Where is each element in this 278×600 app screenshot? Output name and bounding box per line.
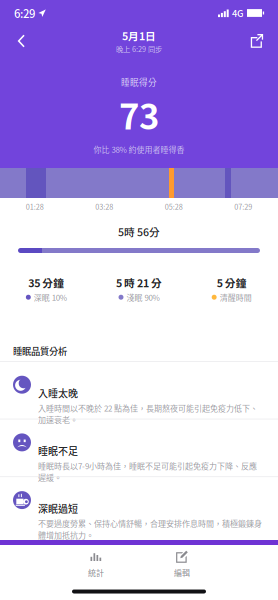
staticText: 03:28 xyxy=(95,201,113,212)
staticText: 淺眠 90% xyxy=(126,291,159,303)
staticText: 35 分鐘 xyxy=(28,275,64,290)
staticText: 5 分鐘 xyxy=(217,275,247,290)
staticText: 入睡時間以不晚於 22 點為佳，長期熬夜可能引起免疫力低下、加速衰老。 xyxy=(38,402,258,425)
staticText: 5月1日 xyxy=(122,28,156,43)
staticText: 5 時 21 分 xyxy=(116,275,162,290)
button[interactable]: 睡眠不足 xyxy=(0,419,278,476)
button[interactable]: 編輯 xyxy=(154,547,210,581)
staticText: 深眠過短 xyxy=(38,501,78,516)
staticText: 編輯 xyxy=(174,567,190,578)
staticText: 睡眠品質分析 xyxy=(13,344,67,357)
staticText: 不要過度勞累、保持心情舒暢，合理安排作息時間，積極鍛鍊身體增加抵抗力。 xyxy=(38,518,262,541)
staticText: 5時 56分 xyxy=(118,224,160,239)
button[interactable]: 統計 xyxy=(68,547,124,581)
staticText: 入睡太晚 xyxy=(38,386,78,400)
staticText: 深眠 10% xyxy=(34,291,67,303)
staticText: 05:28 xyxy=(165,201,183,212)
staticText: 01:28 xyxy=(26,201,44,212)
button[interactable]: Back xyxy=(4,26,38,56)
staticText: 07:29 xyxy=(234,201,252,212)
staticText: 睡眠時長以7-9小時為佳，睡眠不足可能引起免疫力下降、反應遲緩。 xyxy=(38,460,257,483)
staticText: 清醒時間 xyxy=(220,291,252,303)
staticText: 73 xyxy=(119,89,159,139)
button[interactable]: Share xyxy=(240,26,274,56)
staticText: 4G xyxy=(232,6,244,20)
button[interactable]: 深眠過短 xyxy=(0,477,278,534)
staticText: 睡眠得分 xyxy=(121,76,157,88)
staticText: 統計 xyxy=(88,567,104,578)
button[interactable]: 入睡太晚 xyxy=(0,362,278,419)
staticText: 你比 38% 約使用者睡得香 xyxy=(93,143,184,155)
staticText: 晚上 6:29 同步 xyxy=(116,43,162,54)
staticText: 6:29 xyxy=(14,5,35,21)
staticText: 睡眠不足 xyxy=(38,443,78,458)
